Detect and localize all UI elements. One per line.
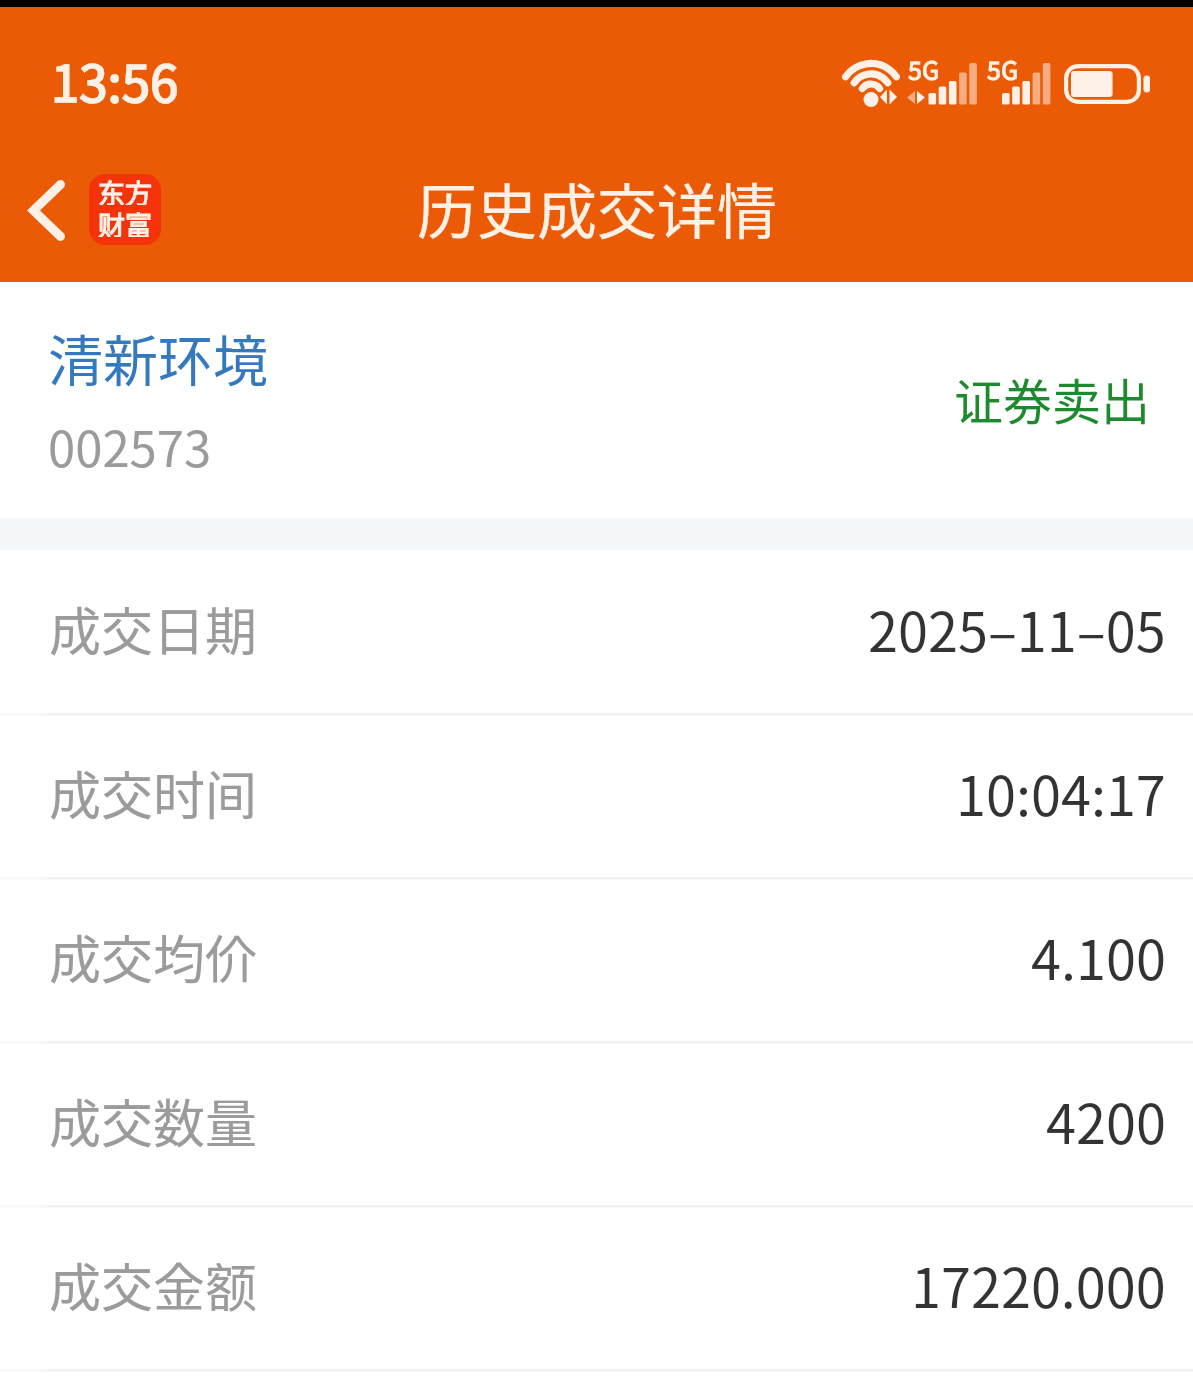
staticText: 5G — [908, 51, 940, 87]
staticText: 17220.000 — [911, 1245, 1166, 1323]
staticText: 4200 — [1046, 1081, 1166, 1159]
staticText: 财富 — [98, 205, 152, 237]
staticText: 证券卖出 — [954, 363, 1151, 434]
staticText: 成交数量 — [49, 1083, 258, 1158]
staticText: 4.100 — [1031, 917, 1166, 995]
staticText: 成交金额 — [49, 1247, 258, 1322]
staticText: 清新环境 — [48, 317, 269, 397]
button[interactable]: 成交日期 — [0, 550, 1193, 714]
button[interactable]: 成交数量 — [0, 1042, 1193, 1206]
staticText: 10:04:17 — [956, 753, 1166, 831]
button[interactable]: 成交时间 — [0, 714, 1193, 878]
staticText: 成交日期 — [49, 591, 258, 666]
staticText: 2025–11–05 — [868, 589, 1166, 667]
staticText: 历史成交详情 — [417, 164, 777, 251]
staticText: 13:56 — [51, 43, 179, 117]
staticText: 东方 — [98, 174, 152, 205]
button[interactable]: 成交均价 — [0, 878, 1193, 1042]
staticText: 成交时间 — [49, 755, 258, 830]
staticText: 5G — [987, 51, 1019, 87]
staticText: 成交均价 — [49, 919, 258, 994]
staticText: 002573 — [48, 410, 212, 481]
button[interactable]: East Money logo — [89, 174, 161, 245]
button[interactable]: 成交金额 — [0, 1206, 1193, 1370]
button[interactable]: Back — [14, 166, 80, 254]
